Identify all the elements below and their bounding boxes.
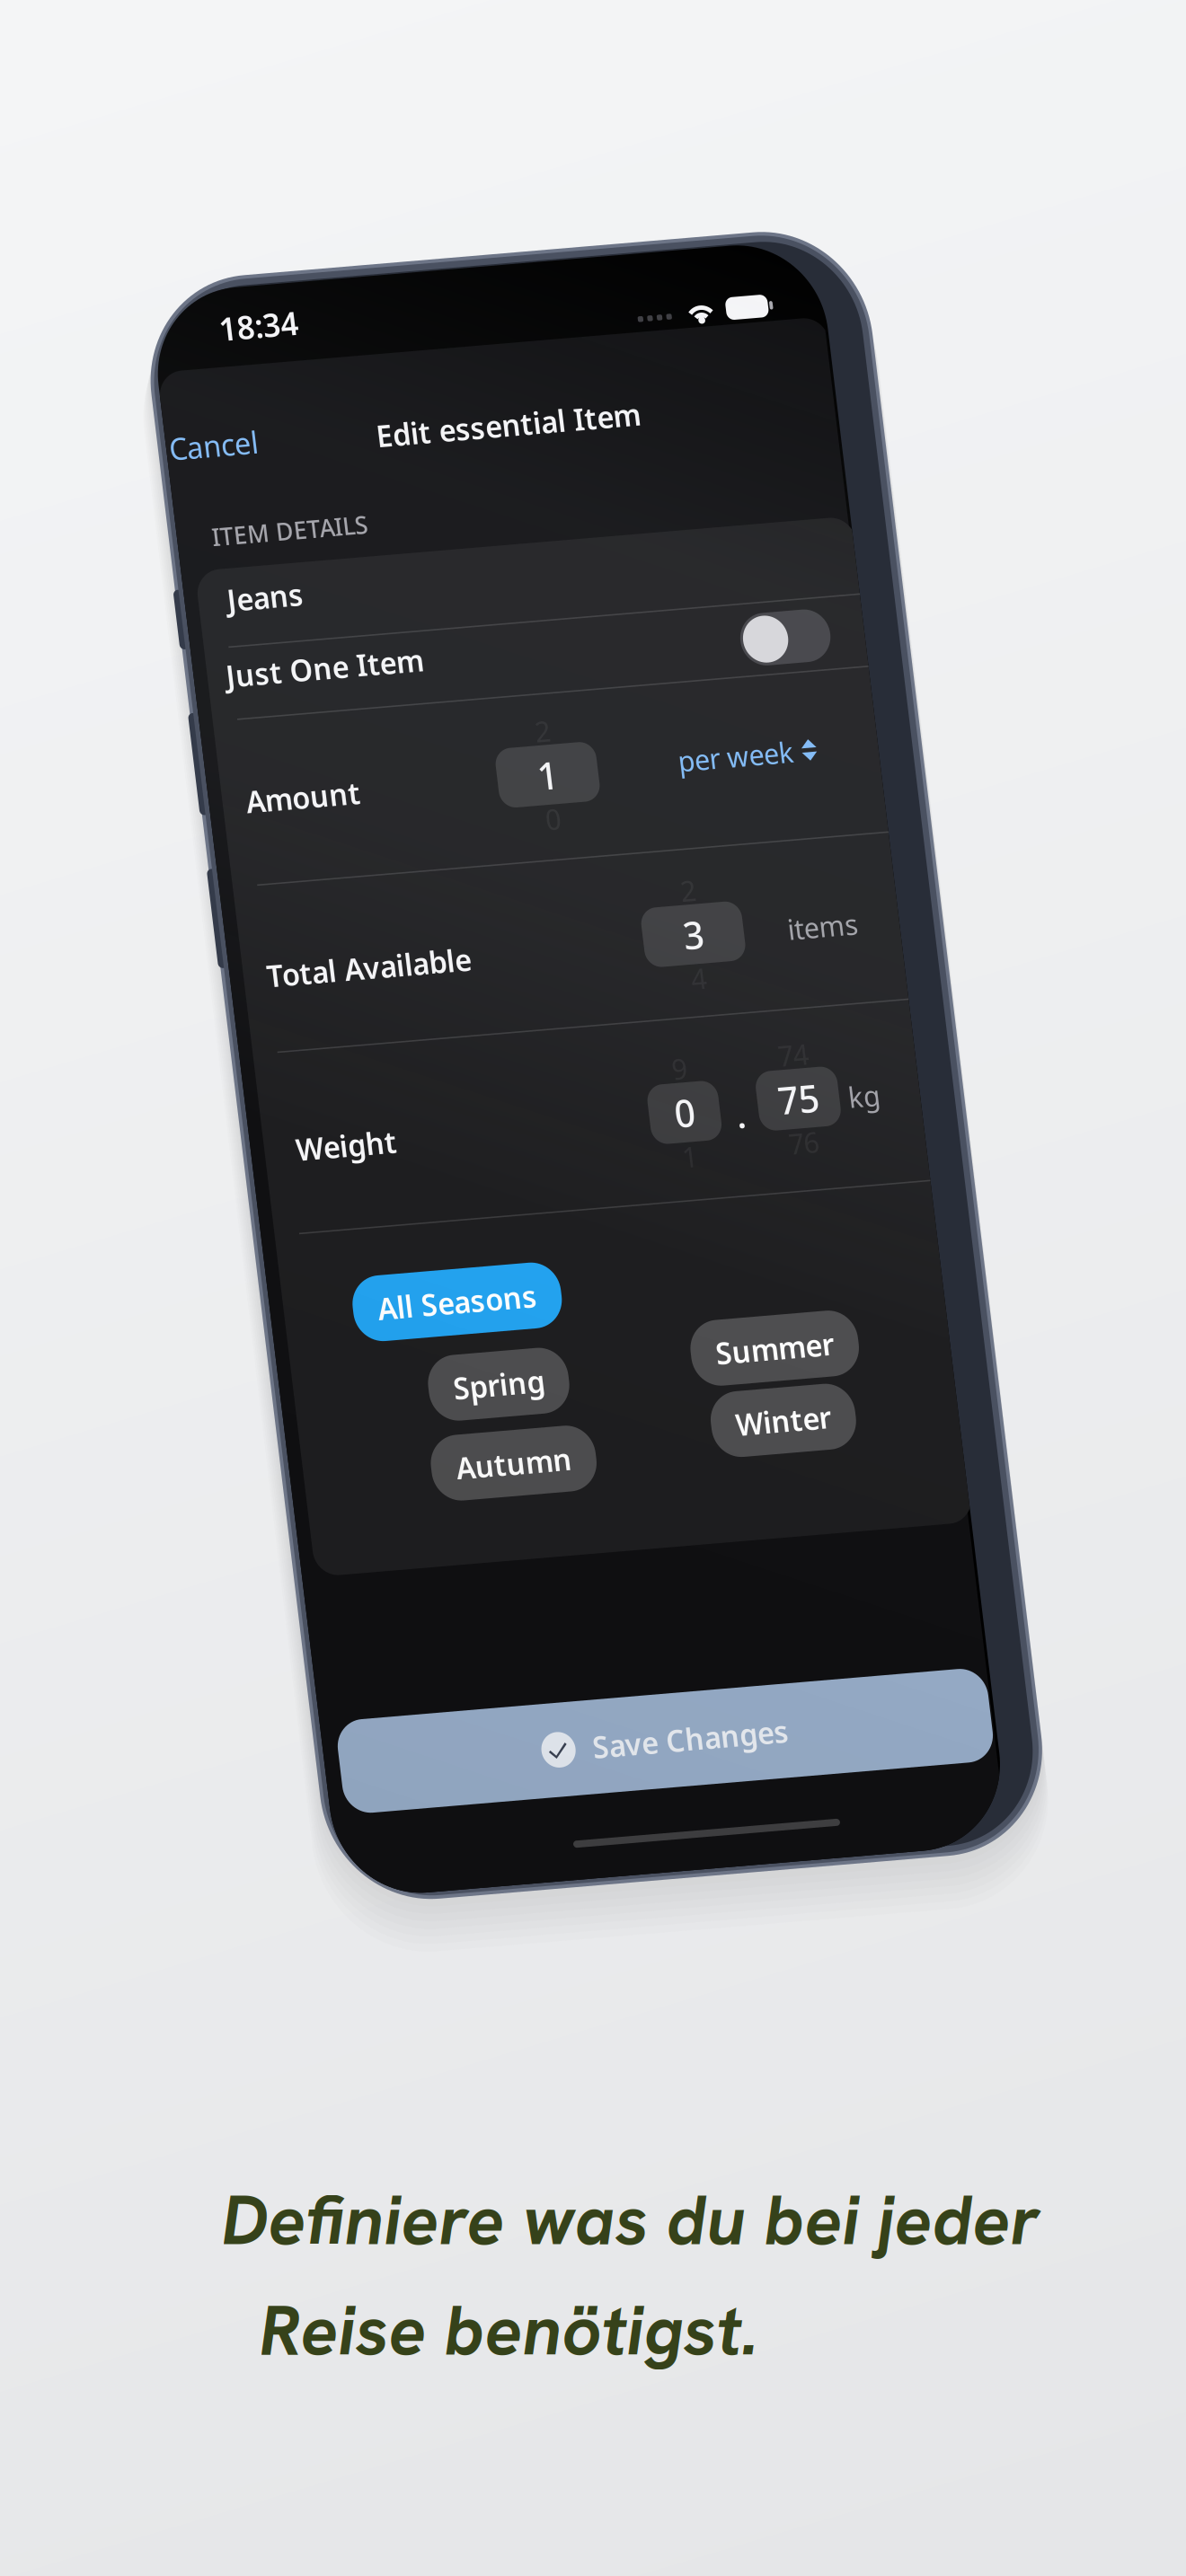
button[interactable]: Save Changes [15,913,445,972]
staticText: Definiere was du bei jeder [221,2175,1040,2265]
staticText: 0 [285,533,299,565]
staticText: Save Changes [182,929,311,955]
staticText: Summer [293,689,372,714]
staticText: Total Available [30,428,164,454]
staticText: 1 [222,314,236,346]
staticText: kg [400,536,421,560]
button[interactable]: Spring [103,689,195,730]
staticText: 74 [358,506,377,530]
button[interactable]: All Seasons [60,635,197,676]
staticText: Reise benötigst. [259,2285,759,2376]
staticText: items [374,427,420,451]
button[interactable]: Just One Item [366,239,425,273]
staticText: . [326,539,332,568]
button[interactable]: Autumn [98,739,207,781]
staticText: 75 [354,530,381,562]
staticText: All Seasons [76,643,181,668]
staticText: 0 [224,346,234,369]
button[interactable]: Amount: 1 [196,311,262,348]
button[interactable]: Weight kilograms: 0 [269,530,315,568]
button[interactable]: Weight grams: 75 [341,527,394,565]
button[interactable]: Summer [277,681,388,722]
staticText: 9 [287,509,297,533]
